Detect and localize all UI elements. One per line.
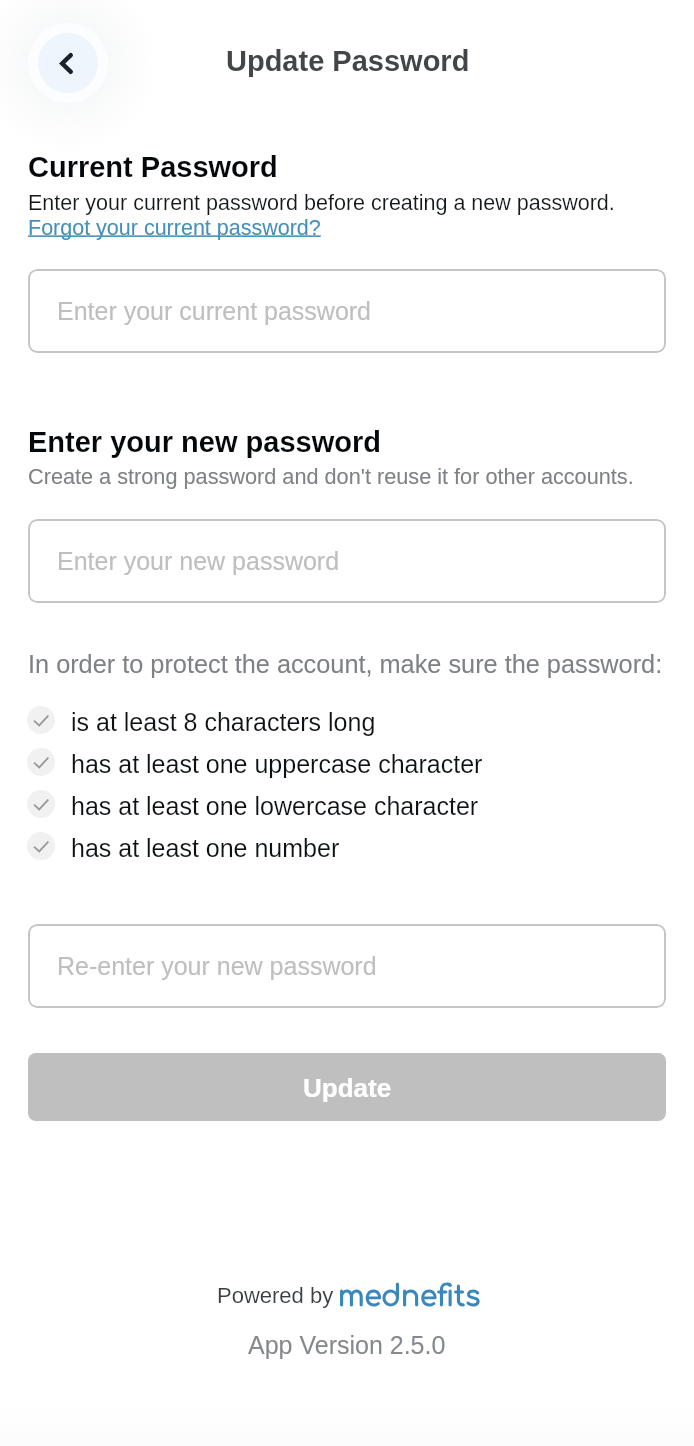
button[interactable]: Enter your current password — [28, 269, 666, 353]
staticText: Create a strong password and don't reuse… — [28, 464, 634, 488]
button[interactable]: Update — [28, 1053, 666, 1121]
staticText: Enter your new password — [28, 426, 381, 458]
staticText: Enter your current password before creat… — [28, 191, 615, 215]
button[interactable]: Forgot your current password? — [28, 216, 321, 240]
button[interactable]: Enter your new password — [28, 519, 666, 603]
staticText: Enter your current password — [57, 297, 372, 325]
staticText: has at least one lowercase character — [71, 792, 479, 820]
staticText: has at least one number — [71, 834, 340, 862]
button[interactable]: Back — [28, 23, 108, 103]
staticText: Re-enter your new password — [57, 952, 377, 980]
button[interactable]: Re-enter your new password — [28, 924, 666, 1008]
staticText: App Version 2.5.0 — [248, 1331, 446, 1359]
staticText: Current Password — [28, 151, 278, 183]
staticText: Enter your new password — [57, 547, 340, 575]
staticText: is at least 8 characters long — [71, 708, 376, 736]
staticText: has at least one uppercase character — [71, 750, 483, 778]
staticText: In order to protect the account, make su… — [28, 650, 663, 678]
staticText: Update Password — [226, 45, 470, 77]
staticText: Update — [303, 1073, 392, 1102]
staticText: mednefits — [338, 1281, 481, 1312]
staticText: Powered by — [217, 1283, 334, 1308]
